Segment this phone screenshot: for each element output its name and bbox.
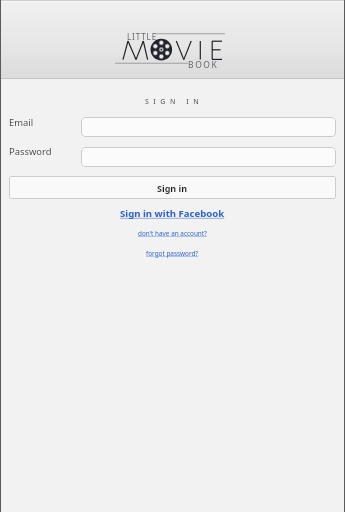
button[interactable]: Password input [81, 147, 336, 167]
button[interactable]: Sign in with Facebook [120, 207, 225, 220]
staticText: LITTLE [127, 31, 157, 42]
button[interactable]: Email input [81, 117, 336, 137]
staticText: don't have an account? [138, 229, 207, 238]
staticText: S I G N I N [0, 97, 345, 107]
staticText: Sign in [157, 182, 188, 194]
staticText: Password [9, 145, 52, 158]
staticText: Sign in with Facebook [120, 207, 225, 220]
staticText: forgot password? [146, 249, 199, 258]
staticText: Email [9, 116, 34, 129]
button[interactable]: Sign in [9, 176, 336, 199]
staticText: BOOK [188, 59, 219, 71]
button[interactable]: don't have an account? [138, 229, 207, 238]
button[interactable]: forgot password? [146, 249, 199, 258]
